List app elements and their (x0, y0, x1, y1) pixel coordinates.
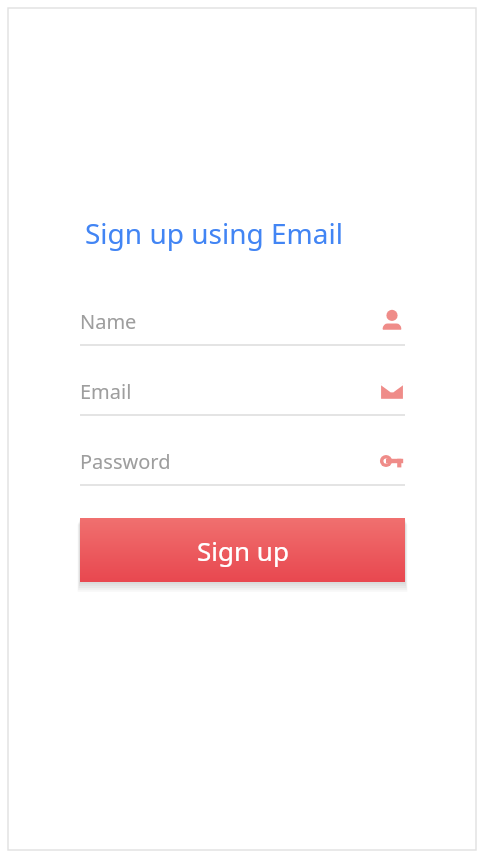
button[interactable]: Name (80, 298, 405, 346)
button[interactable]: Email (80, 368, 405, 416)
button[interactable]: Password (80, 438, 405, 486)
button[interactable]: Sign up (80, 518, 405, 582)
staticText: Name (80, 308, 379, 335)
staticText: Sign up (197, 533, 289, 568)
staticText: Sign up using Email (85, 214, 343, 252)
staticText: Password (80, 448, 379, 475)
staticText: Email (80, 378, 379, 405)
